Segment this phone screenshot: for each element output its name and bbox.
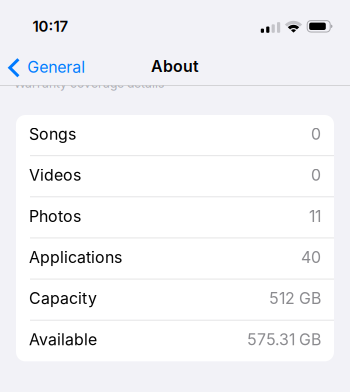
- staticText: 40: [301, 248, 321, 267]
- staticText: Capacity: [29, 289, 97, 308]
- staticText: About: [151, 57, 199, 76]
- staticText: 0: [311, 165, 321, 185]
- staticText: General: [27, 57, 85, 77]
- staticText: 575.31 GB: [247, 330, 321, 349]
- staticText: Available: [29, 330, 97, 349]
- staticText: 512 GB: [269, 289, 321, 308]
- staticText: Warranty coverage details: [14, 76, 164, 91]
- staticText: Songs: [29, 124, 76, 144]
- staticText: 0: [311, 124, 321, 144]
- staticText: Photos: [29, 206, 81, 226]
- staticText: 11: [309, 206, 321, 226]
- button[interactable]: Back to General: [0, 56, 85, 76]
- staticText: Applications: [29, 248, 122, 267]
- staticText: 10:17: [32, 17, 68, 35]
- staticText: Videos: [29, 165, 81, 185]
